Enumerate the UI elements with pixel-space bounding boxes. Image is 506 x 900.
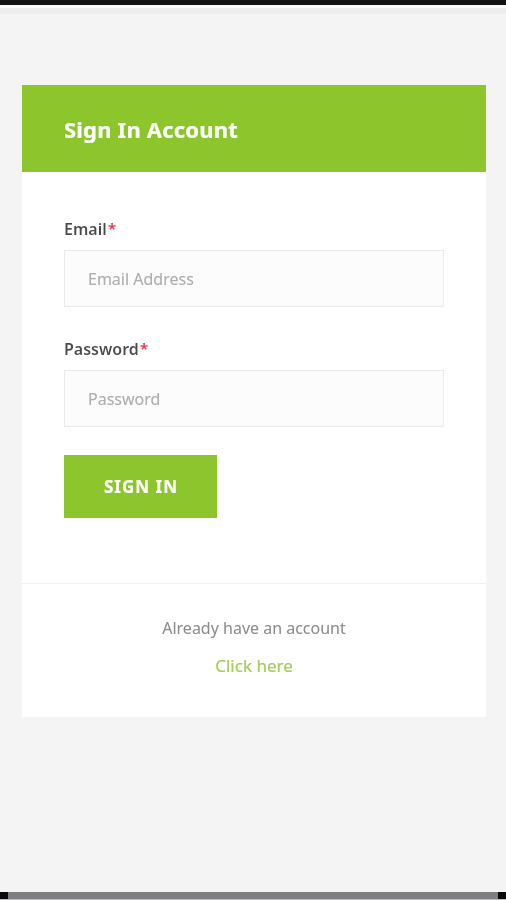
- staticText: Sign In Account: [64, 114, 239, 144]
- staticText: Email: [64, 218, 107, 240]
- button[interactable]: Password: [64, 370, 444, 427]
- staticText: Password: [88, 388, 161, 410]
- button[interactable]: Email Address: [64, 250, 444, 307]
- button[interactable]: Click here: [209, 652, 299, 679]
- staticText: *: [108, 218, 117, 238]
- staticText: Password: [64, 338, 139, 360]
- button[interactable]: SIGN IN: [64, 455, 217, 518]
- staticText: Email Address: [88, 268, 194, 290]
- staticText: Already have an account: [162, 617, 346, 639]
- staticText: *: [140, 338, 149, 358]
- staticText: SIGN IN: [104, 475, 178, 498]
- staticText: Click here: [215, 654, 293, 677]
